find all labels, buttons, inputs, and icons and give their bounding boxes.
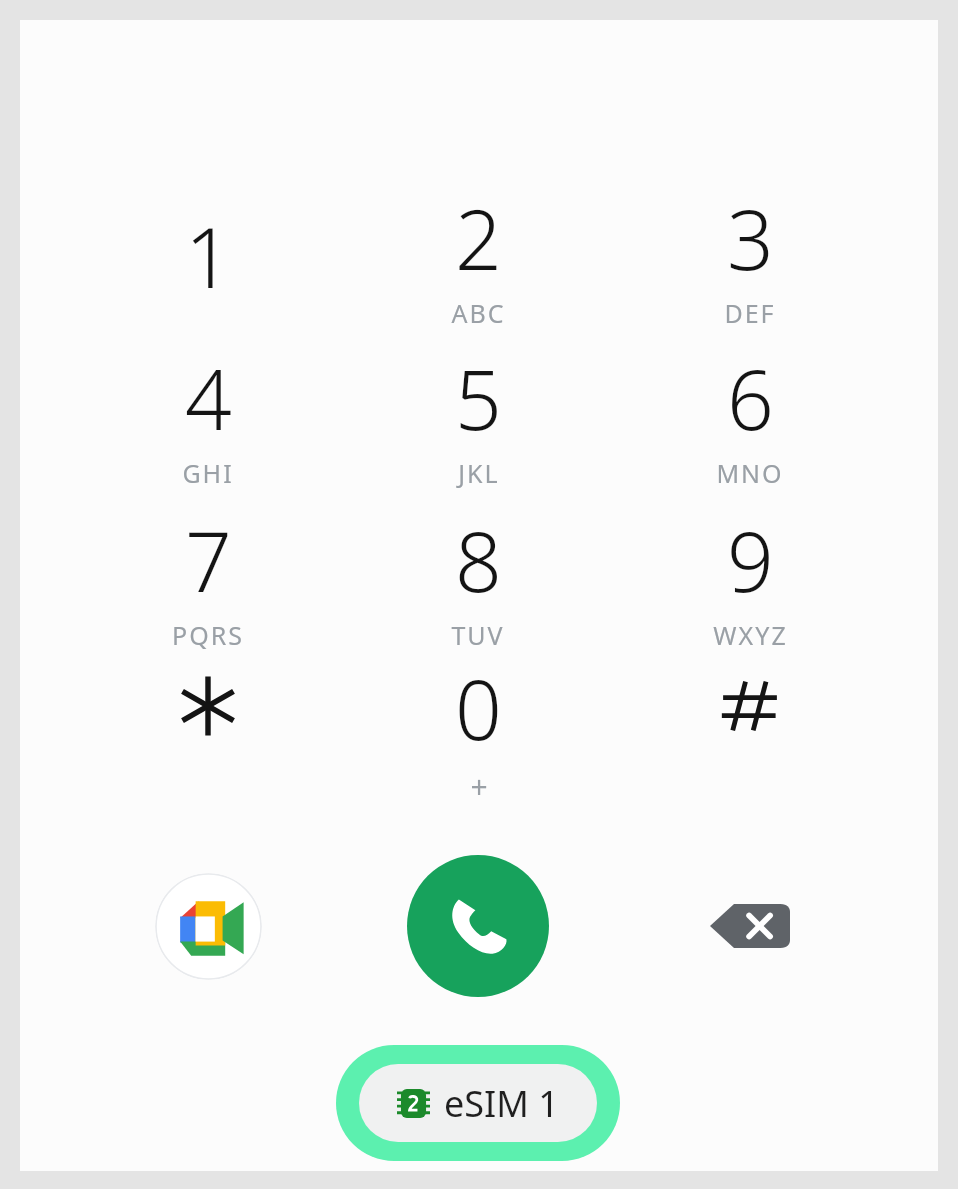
staticText: TUV (451, 618, 505, 652)
button[interactable]: Backspace (694, 884, 806, 968)
staticText: 8 (455, 504, 502, 616)
staticText: 5 (455, 342, 502, 454)
staticText: GHI (182, 456, 234, 490)
button[interactable]: Star (136, 652, 280, 804)
button[interactable]: 3 (678, 180, 822, 332)
staticText: 6 (727, 342, 774, 454)
button[interactable]: 4 (136, 340, 280, 492)
staticText: MNO (716, 456, 784, 490)
button[interactable]: eSIM 1 (336, 1045, 620, 1161)
staticText: WXYZ (713, 618, 788, 652)
staticText: 7 (185, 504, 232, 616)
button[interactable]: 8 (406, 502, 550, 654)
button[interactable]: 0 (406, 652, 550, 804)
button[interactable]: Pound (678, 652, 822, 804)
staticText: 3 (727, 182, 774, 294)
staticText: JKL (458, 456, 500, 490)
staticText: 9 (727, 504, 774, 616)
button[interactable]: 5 (406, 340, 550, 492)
button[interactable]: Call (407, 855, 549, 997)
staticText: 2 (455, 182, 502, 294)
staticText: PQRS (172, 618, 244, 652)
staticText: 1 (185, 200, 232, 312)
staticText: DEF (724, 296, 776, 330)
staticText: + (470, 766, 488, 804)
staticText: ABC (451, 296, 506, 330)
button[interactable]: 7 (136, 502, 280, 654)
staticText: 4 (185, 342, 232, 454)
staticText: eSIM 1 (444, 1079, 559, 1128)
button[interactable]: 9 (678, 502, 822, 654)
button[interactable]: 1 (136, 180, 280, 332)
button[interactable]: 2 (406, 180, 550, 332)
button[interactable]: 6 (678, 340, 822, 492)
staticText: 0 (455, 652, 502, 764)
button[interactable]: Google Meet video call (155, 873, 262, 980)
